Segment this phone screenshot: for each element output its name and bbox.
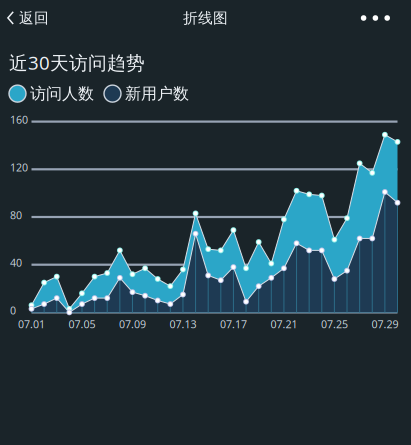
staticText: 07.25 bbox=[321, 317, 348, 331]
button[interactable]: More options bbox=[343, 6, 411, 30]
staticText: 07.21 bbox=[270, 317, 297, 331]
staticText: 160 bbox=[10, 112, 28, 127]
staticText: 80 bbox=[10, 208, 22, 222]
staticText: 120 bbox=[10, 160, 28, 174]
staticText: 07.09 bbox=[119, 317, 146, 331]
staticText: 新用户数 bbox=[125, 84, 189, 103]
staticText: 07.01 bbox=[18, 317, 45, 331]
staticText: 40 bbox=[10, 256, 22, 270]
staticText: 07.05 bbox=[68, 317, 95, 331]
staticText: 0 bbox=[10, 303, 16, 317]
staticText: 07.13 bbox=[169, 317, 196, 331]
staticText: 折线图 bbox=[183, 9, 228, 27]
staticText: 近30天访问趋势 bbox=[9, 50, 145, 75]
button[interactable]: 返回 bbox=[0, 2, 59, 34]
staticText: 07.17 bbox=[220, 317, 247, 331]
staticText: 访问人数 bbox=[30, 84, 94, 103]
staticText: 返回 bbox=[19, 9, 49, 27]
staticText: 07.29 bbox=[371, 317, 398, 331]
